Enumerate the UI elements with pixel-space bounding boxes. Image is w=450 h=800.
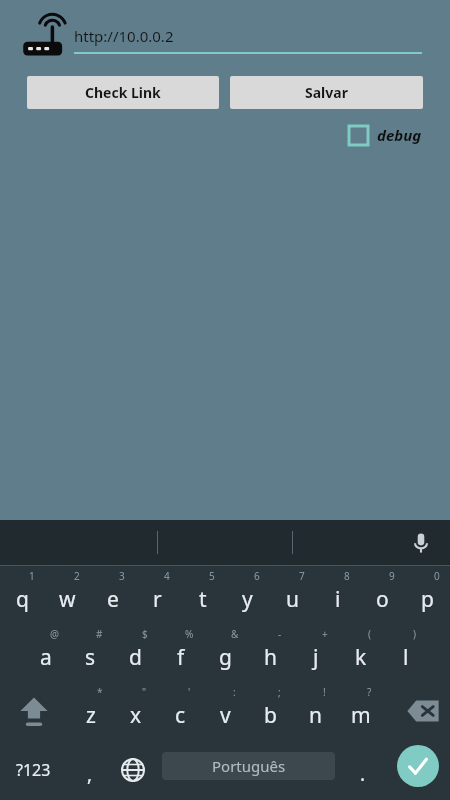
staticText: Salvar: [305, 83, 348, 102]
staticText: !: [323, 685, 326, 699]
staticText: 9: [389, 569, 395, 583]
button[interactable]: *: [68, 682, 113, 740]
staticText: ,: [87, 761, 93, 787]
staticText: 2: [74, 569, 80, 583]
button[interactable]: %: [158, 624, 203, 682]
staticText: c: [175, 701, 186, 730]
button[interactable]: $: [113, 624, 158, 682]
staticText: g: [219, 643, 232, 672]
staticText: b: [264, 701, 277, 730]
button[interactable]: http://10.0.0.2: [74, 26, 422, 54]
staticText: (: [368, 627, 371, 641]
button[interactable]: (: [338, 624, 383, 682]
staticText: ': [188, 685, 191, 699]
staticText: r: [153, 585, 162, 614]
button[interactable]: ?: [338, 682, 383, 740]
staticText: $: [142, 627, 148, 641]
staticText: ?123: [16, 759, 51, 781]
button[interactable]: Backspace: [395, 682, 450, 740]
staticText: 7: [299, 569, 305, 583]
staticText: 3: [119, 569, 125, 583]
button[interactable]: +: [293, 624, 338, 682]
button[interactable]: @: [23, 624, 68, 682]
button[interactable]: 5: [180, 566, 225, 624]
button[interactable]: -: [248, 624, 293, 682]
staticText: y: [242, 585, 253, 614]
staticText: z: [86, 701, 96, 730]
staticText: n: [309, 701, 322, 730]
staticText: -: [278, 627, 282, 641]
button[interactable]: Change language: [112, 740, 154, 800]
button[interactable]: !: [293, 682, 338, 740]
staticText: s: [85, 643, 96, 672]
staticText: .: [360, 761, 366, 787]
staticText: h: [264, 643, 277, 672]
button[interactable]: Enter: [397, 745, 439, 787]
staticText: p: [421, 585, 434, 614]
staticText: 6: [254, 569, 260, 583]
button[interactable]: ): [383, 624, 428, 682]
button[interactable]: 1: [0, 566, 45, 624]
staticText: e: [107, 585, 119, 614]
staticText: w: [59, 585, 76, 614]
staticText: d: [129, 643, 142, 672]
staticText: 1: [29, 569, 35, 583]
staticText: ): [413, 627, 416, 641]
button[interactable]: ;: [248, 682, 293, 740]
staticText: &: [231, 627, 239, 641]
button[interactable]: ": [113, 682, 158, 740]
button[interactable]: 4: [135, 566, 180, 624]
button[interactable]: Check Link: [27, 76, 219, 109]
button[interactable]: 6: [225, 566, 270, 624]
button[interactable]: debug: [345, 121, 426, 149]
button[interactable]: 0: [405, 566, 450, 624]
staticText: :: [233, 685, 236, 699]
button[interactable]: ': [158, 682, 203, 740]
staticText: q: [16, 585, 29, 614]
button[interactable]: 3: [90, 566, 135, 624]
staticText: u: [286, 585, 299, 614]
staticText: l: [403, 643, 409, 672]
button[interactable]: Voice input: [406, 528, 436, 558]
staticText: +: [322, 627, 328, 641]
button[interactable]: ?123: [0, 740, 67, 800]
staticText: x: [130, 701, 142, 730]
staticText: ": [142, 685, 147, 699]
staticText: a: [40, 643, 52, 672]
staticText: o: [376, 585, 389, 614]
staticText: http://10.0.0.2: [74, 26, 174, 46]
button[interactable]: Salvar: [230, 76, 423, 109]
staticText: %: [185, 627, 194, 641]
staticText: ;: [278, 685, 281, 699]
staticText: 8: [344, 569, 350, 583]
button[interactable]: 8: [315, 566, 360, 624]
button[interactable]: #: [68, 624, 113, 682]
button[interactable]: 9: [360, 566, 405, 624]
button[interactable]: Português: [162, 752, 335, 780]
staticText: v: [220, 701, 231, 730]
staticText: k: [355, 643, 367, 672]
button[interactable]: &: [203, 624, 248, 682]
button[interactable]: .: [340, 740, 385, 800]
button[interactable]: Shift: [0, 682, 67, 740]
staticText: Português: [212, 756, 286, 776]
staticText: @: [50, 627, 59, 641]
button[interactable]: :: [203, 682, 248, 740]
staticText: 5: [209, 569, 215, 583]
button[interactable]: 7: [270, 566, 315, 624]
staticText: 0: [434, 569, 440, 583]
staticText: m: [351, 701, 371, 730]
staticText: #: [96, 627, 103, 641]
staticText: ?: [367, 685, 372, 699]
staticText: debug: [377, 125, 422, 145]
other: Router: [20, 16, 74, 62]
button[interactable]: 2: [45, 566, 90, 624]
staticText: t: [199, 585, 207, 614]
staticText: Check Link: [85, 83, 161, 102]
staticText: *: [97, 685, 103, 699]
staticText: 4: [164, 569, 170, 583]
staticText: i: [335, 585, 341, 614]
staticText: j: [313, 643, 319, 672]
button[interactable]: ,: [67, 740, 112, 800]
staticText: f: [177, 643, 185, 672]
